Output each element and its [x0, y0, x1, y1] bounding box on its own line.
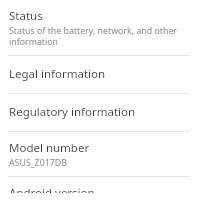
button[interactable]: Regulatory information — [0, 94, 200, 131]
button[interactable]: Android version — [0, 177, 200, 200]
staticText: Model number — [9, 140, 90, 156]
staticText: Status — [9, 8, 43, 24]
staticText: Legal information — [9, 66, 106, 82]
staticText: Status of the battery, network, and othe… — [9, 25, 191, 48]
button[interactable]: Legal information — [0, 56, 200, 93]
staticText: ASUS_Z017DB — [9, 157, 67, 169]
button[interactable]: Model number — [0, 132, 200, 176]
staticText: Regulatory information — [9, 104, 136, 120]
staticText: Android version — [9, 185, 95, 193]
button[interactable]: Status — [0, 0, 200, 55]
